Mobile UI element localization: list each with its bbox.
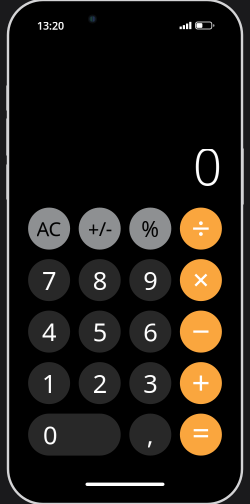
staticText: 4 — [42, 315, 56, 348]
button[interactable]: 0 — [28, 414, 121, 456]
staticText: 0 — [193, 132, 222, 200]
button[interactable] — [79, 259, 121, 301]
button[interactable] — [129, 362, 171, 404]
staticText: 3 — [143, 366, 157, 400]
button[interactable]: Equals — [180, 414, 222, 456]
staticText: 8 — [93, 263, 107, 297]
staticText: 6 — [143, 315, 157, 348]
staticText: % — [141, 214, 159, 243]
staticText: 13:20 — [37, 18, 64, 33]
staticText: 0 — [43, 418, 57, 451]
staticText: , — [147, 418, 154, 451]
button[interactable] — [28, 208, 70, 250]
button[interactable] — [28, 362, 70, 404]
button[interactable] — [129, 259, 171, 301]
staticText: 2 — [93, 366, 107, 400]
button[interactable]: Divide — [180, 208, 222, 250]
button[interactable] — [129, 208, 171, 250]
staticText: +/- — [88, 215, 112, 242]
button[interactable] — [129, 311, 171, 353]
button[interactable] — [79, 311, 121, 353]
button[interactable] — [28, 259, 70, 301]
button[interactable] — [79, 362, 121, 404]
button[interactable] — [129, 414, 171, 456]
staticText: 5 — [93, 315, 107, 348]
staticText: AC — [37, 215, 62, 242]
staticText: 7 — [42, 263, 56, 297]
staticText: 1 — [42, 366, 56, 400]
button[interactable]: Subtract — [180, 311, 222, 353]
button[interactable]: Add — [180, 362, 222, 404]
button[interactable] — [79, 208, 121, 250]
staticText: 9 — [143, 263, 157, 297]
button[interactable]: Multiply — [180, 259, 222, 301]
button[interactable] — [28, 311, 70, 353]
